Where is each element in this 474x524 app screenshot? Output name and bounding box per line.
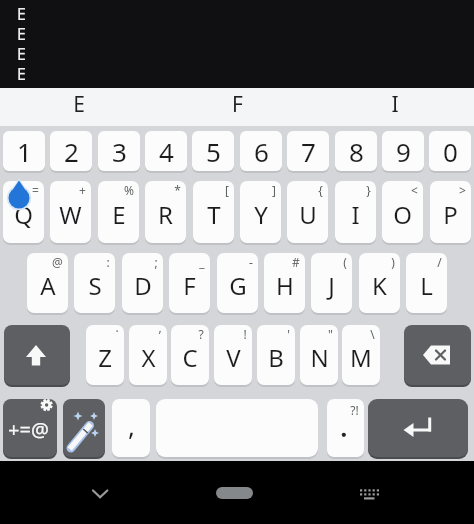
button[interactable]: E xyxy=(0,88,158,126)
button[interactable]: G xyxy=(217,253,258,313)
staticText: E xyxy=(17,63,26,85)
staticText: ? xyxy=(198,326,204,342)
button[interactable]: Q xyxy=(3,181,44,243)
button[interactable] xyxy=(354,479,382,507)
staticText: N xyxy=(310,341,329,374)
staticText: 7 xyxy=(301,134,316,169)
button[interactable]: F xyxy=(169,253,210,313)
staticText: 9 xyxy=(396,134,411,169)
button[interactable]: 9 xyxy=(382,131,424,171)
button[interactable]: 1 xyxy=(3,131,45,171)
button[interactable]: 6 xyxy=(240,131,282,171)
staticText: 4 xyxy=(159,134,174,169)
staticText: 2 xyxy=(64,134,79,169)
staticText: +=@ xyxy=(8,416,49,443)
button[interactable]: L xyxy=(406,253,447,313)
staticText: B xyxy=(268,341,284,374)
staticText: , xyxy=(128,408,135,443)
staticText: 0 xyxy=(443,134,458,169)
button[interactable]: 2 xyxy=(50,131,92,171)
staticText: A xyxy=(40,269,56,302)
button[interactable]: 7 xyxy=(287,131,329,171)
staticText: L xyxy=(420,269,433,302)
staticText: V xyxy=(226,341,241,374)
staticText: ?! xyxy=(350,402,359,418)
button[interactable]: I xyxy=(316,88,474,126)
staticText: C xyxy=(182,341,198,374)
button[interactable]: D xyxy=(122,253,163,313)
staticText: O xyxy=(393,198,412,231)
button[interactable] xyxy=(404,325,471,385)
staticText: F xyxy=(232,90,243,119)
staticText: E xyxy=(17,43,26,65)
button[interactable]: I xyxy=(335,181,376,243)
button[interactable]: H xyxy=(264,253,305,313)
staticText: + xyxy=(79,182,86,198)
button[interactable]: A xyxy=(27,253,68,313)
staticText: E xyxy=(73,90,85,119)
button[interactable]: Y xyxy=(240,181,281,243)
staticText: I xyxy=(391,90,399,119)
button[interactable]: 5 xyxy=(192,131,234,171)
staticText: E xyxy=(17,23,26,45)
staticText: ; xyxy=(154,254,158,270)
staticText: 3 xyxy=(112,134,127,169)
button[interactable]: 3 xyxy=(98,131,140,171)
staticText: , xyxy=(158,325,162,335)
staticText: E xyxy=(17,3,26,25)
button[interactable] xyxy=(4,325,70,385)
button[interactable] xyxy=(63,399,105,457)
button[interactable]: C xyxy=(171,325,209,385)
button[interactable] xyxy=(86,479,114,507)
staticText: " xyxy=(328,326,333,342)
button[interactable]: F xyxy=(158,88,316,126)
staticText: W xyxy=(59,198,82,231)
staticText: E xyxy=(112,198,126,231)
button[interactable] xyxy=(156,399,318,457)
button[interactable] xyxy=(368,399,468,457)
staticText: I xyxy=(351,198,360,231)
staticText: [ xyxy=(225,182,229,198)
staticText: H xyxy=(276,269,294,302)
staticText: @ xyxy=(52,254,63,270)
button[interactable]: V xyxy=(214,325,252,385)
button[interactable]: X xyxy=(129,325,167,385)
button[interactable] xyxy=(212,479,257,507)
button[interactable]: M xyxy=(342,325,380,385)
button[interactable]: Z xyxy=(86,325,124,385)
staticText: } xyxy=(366,182,371,198)
staticText: 6 xyxy=(254,134,269,169)
staticText: \ xyxy=(370,326,375,342)
button[interactable]: 0 xyxy=(429,131,471,171)
staticText: . xyxy=(115,325,119,335)
staticText: T xyxy=(207,198,221,231)
staticText: G xyxy=(229,269,247,302)
button[interactable]: R xyxy=(145,181,186,243)
button[interactable]: T xyxy=(193,181,234,243)
button[interactable]: 4 xyxy=(145,131,187,171)
button[interactable]: N xyxy=(300,325,338,385)
staticText: P xyxy=(443,198,458,231)
staticText: Y xyxy=(254,198,268,231)
button[interactable]: ?! xyxy=(327,399,364,457)
button[interactable]: +=@ xyxy=(3,399,57,457)
staticText: 8 xyxy=(349,134,364,169)
button[interactable]: E xyxy=(98,181,139,243)
staticText: Q xyxy=(14,198,33,231)
button[interactable]: O xyxy=(382,181,423,243)
staticText: S xyxy=(88,269,102,302)
button[interactable]: K xyxy=(359,253,400,313)
button[interactable]: J xyxy=(311,253,352,313)
staticText: D xyxy=(134,269,152,302)
staticText: { xyxy=(318,182,323,198)
button[interactable]: 8 xyxy=(335,131,377,171)
button[interactable]: P xyxy=(430,181,471,243)
button[interactable]: B xyxy=(257,325,295,385)
staticText: % xyxy=(124,182,134,198)
staticText: ) xyxy=(391,254,395,270)
button[interactable]: S xyxy=(74,253,115,313)
button[interactable]: W xyxy=(50,181,91,243)
staticText: F xyxy=(183,269,196,302)
button[interactable]: U xyxy=(287,181,328,243)
button[interactable]: , xyxy=(112,399,150,457)
